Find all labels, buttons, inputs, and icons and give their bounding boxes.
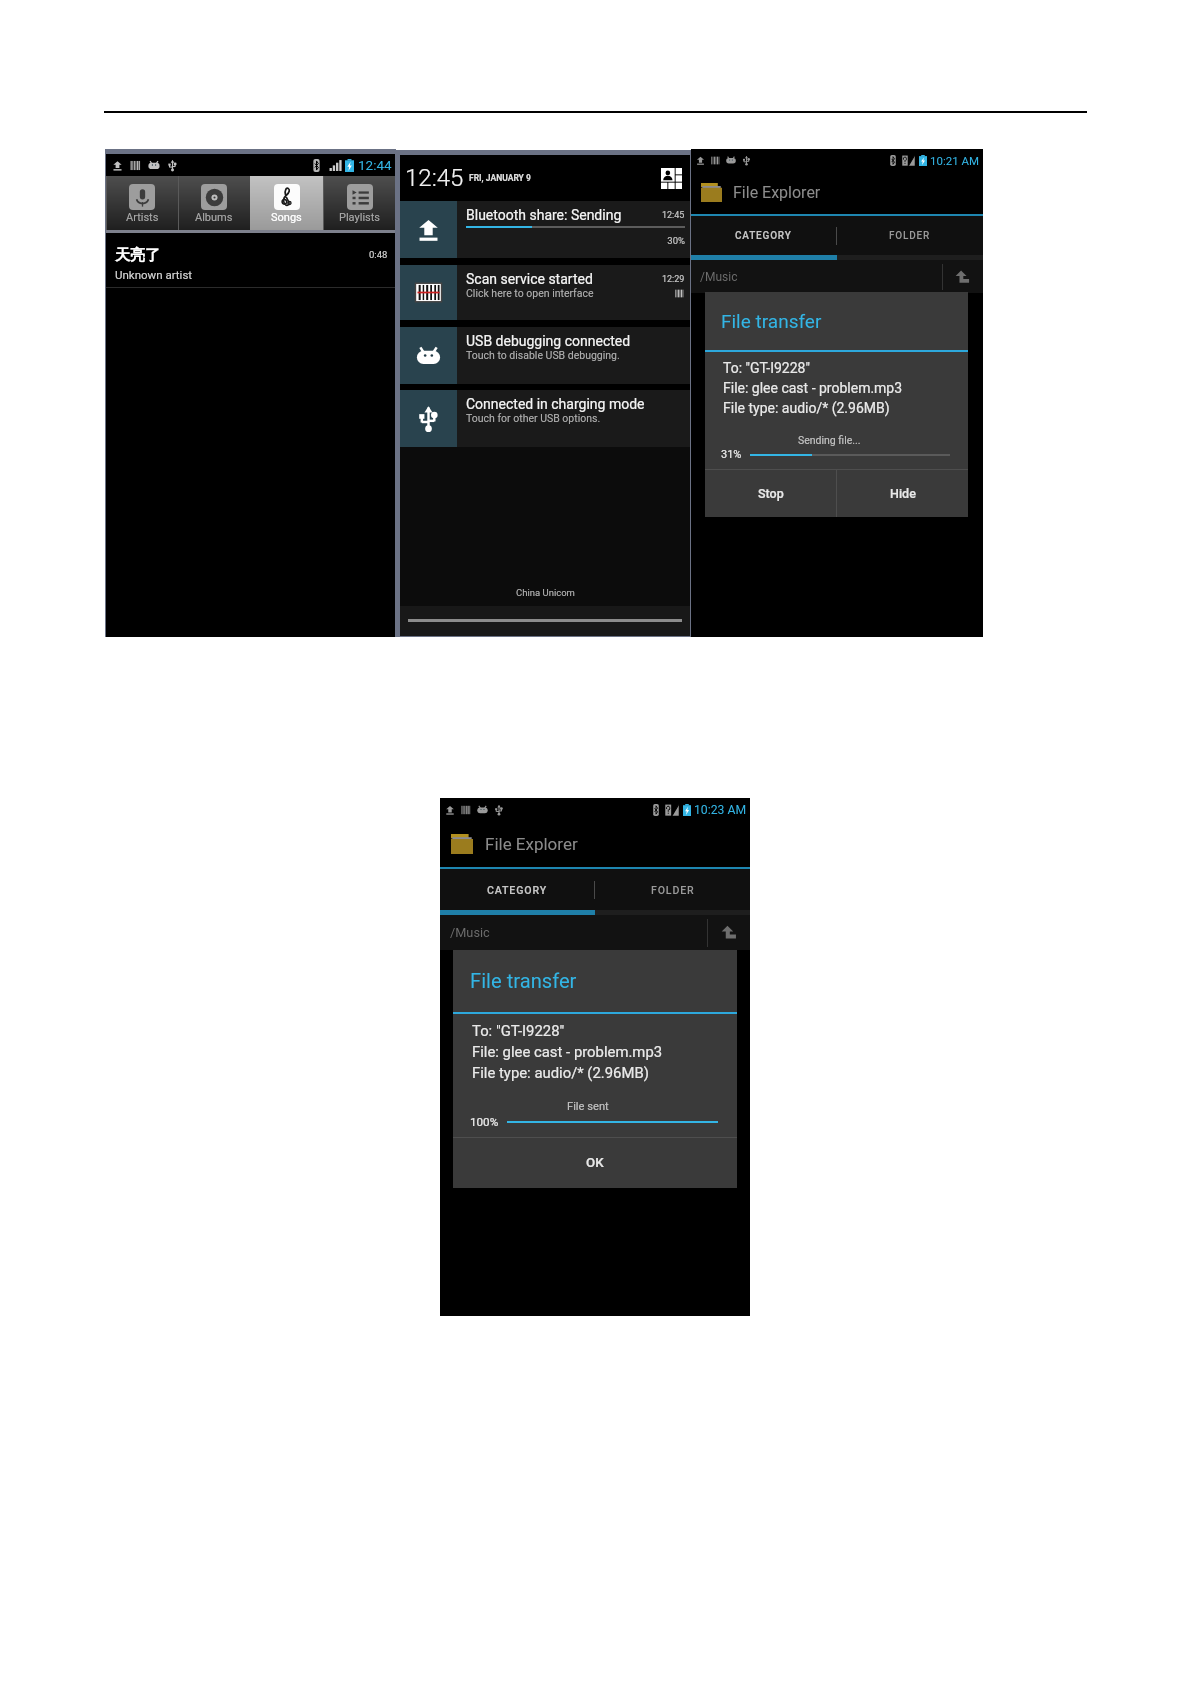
button[interactable]: USB debugging connected [400,327,690,384]
button[interactable]: 天亮了 [106,233,396,287]
staticText: Connected in charging mode [466,396,645,412]
staticText: File Explorer [733,183,821,202]
staticText: /Music [700,270,738,284]
staticText: Artists [126,211,159,224]
button[interactable]: FOLDER [595,869,750,910]
staticText: Touch for other USB options. [466,412,601,424]
staticText: Stop [758,486,784,501]
staticText: CATEGORY [735,230,792,242]
button[interactable]: Up one level [708,915,750,950]
staticText: To: "GT-I9228" [472,1022,565,1039]
staticText: Bluetooth share: Sending [466,207,622,223]
staticText: File transfer [721,310,822,332]
staticText: CATEGORY [487,884,547,896]
staticText: /Music [450,925,490,940]
staticText: File type: audio/* (2.96MB) [472,1064,649,1081]
staticText: FOLDER [889,230,931,242]
button[interactable]: Songs [250,176,323,230]
staticText: File: glee cast - problem.mp3 [472,1043,663,1060]
button[interactable]: Connected in charging mode [400,390,690,447]
staticText: 10:21 AM [930,154,980,167]
staticText: Unknown artist [115,268,193,281]
button[interactable]: Quick settings [658,165,684,191]
staticText: China Unicom [516,587,575,598]
staticText: Sending file... [798,434,861,446]
staticText: File: glee cast - problem.mp3 [723,380,903,396]
staticText: OK [586,1155,604,1171]
staticText: File transfer [470,969,577,993]
button[interactable]: Albums [178,176,250,230]
staticText: 12:45 [405,164,464,192]
button[interactable]: Bluetooth share: Sending [400,201,690,258]
staticText: Songs [271,211,302,224]
staticText: To: "GT-I9228" [723,360,810,376]
button[interactable]: Stop [705,470,836,517]
staticText: 12:29 [662,274,685,285]
button[interactable]: Artists [106,176,178,230]
staticText: Albums [195,211,233,224]
staticText: Playlists [339,211,381,224]
button[interactable]: Hide [837,470,968,517]
button[interactable]: Scan service started [400,265,690,320]
staticText: Hide [890,486,916,501]
button[interactable]: Up one level [943,260,983,293]
staticText: FRI, JANUARY 9 [469,173,531,183]
staticText: USB debugging connected [466,333,631,349]
button[interactable]: CATEGORY [440,869,594,910]
staticText: 天亮了 [115,246,160,265]
staticText: FOLDER [651,884,695,896]
staticText: 31% [721,448,742,461]
staticText: 12:45 [662,210,685,221]
staticText: Touch to disable USB debugging. [466,349,620,361]
button[interactable]: CATEGORY [691,216,836,255]
staticText: 12:44 [358,157,392,173]
button[interactable]: OK [453,1138,737,1188]
staticText: 10:23 AM [694,803,747,817]
staticText: File type: audio/* (2.96MB) [723,400,890,416]
staticText: 100% [470,1115,499,1129]
button[interactable]: Playlists [323,176,396,230]
staticText: Scan service started [466,271,593,287]
staticText: 30% [466,235,685,246]
button[interactable]: FOLDER [837,216,983,255]
staticText: 0:48 [369,249,388,260]
staticText: File Explorer [485,834,578,854]
staticText: Click here to open interface [466,287,594,299]
staticText: File sent [567,1100,609,1113]
